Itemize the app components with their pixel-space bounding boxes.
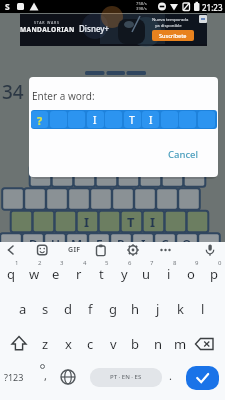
staticText: C bbox=[161, 236, 169, 252]
staticText: ? bbox=[37, 113, 43, 128]
staticText: s bbox=[42, 300, 49, 318]
staticText: a bbox=[19, 300, 27, 318]
staticText: 0 bbox=[218, 259, 222, 267]
staticText: j bbox=[156, 300, 160, 318]
staticText: I bbox=[150, 213, 156, 231]
staticText: , bbox=[44, 368, 47, 383]
staticText: Nueva temporada bbox=[152, 16, 189, 22]
staticText: T bbox=[129, 113, 135, 127]
staticText: D bbox=[29, 236, 38, 252]
staticText: E bbox=[96, 236, 103, 252]
staticText: u bbox=[142, 265, 151, 283]
staticText: 9 bbox=[195, 259, 199, 267]
staticText: Enter a word: bbox=[32, 89, 95, 103]
staticText: m bbox=[174, 335, 187, 353]
staticText: M bbox=[71, 236, 83, 252]
staticText: STAR WARS bbox=[34, 20, 60, 25]
staticText: I bbox=[93, 113, 97, 127]
staticText: ya disponible bbox=[155, 22, 182, 28]
staticText: d bbox=[64, 300, 72, 318]
staticText: 8 bbox=[173, 259, 177, 267]
staticText: . bbox=[169, 368, 172, 383]
staticText: k bbox=[177, 300, 184, 318]
staticText: I bbox=[141, 236, 146, 252]
staticText: R bbox=[117, 236, 125, 252]
staticText: I bbox=[84, 213, 90, 231]
staticText: 398/s bbox=[136, 6, 147, 12]
staticText: o bbox=[187, 265, 195, 283]
staticText: e bbox=[52, 265, 60, 283]
staticText: 7 bbox=[150, 259, 154, 267]
staticText: 2 bbox=[38, 259, 42, 267]
staticText: x bbox=[65, 335, 72, 353]
staticText: ?123 bbox=[4, 371, 24, 383]
staticText: O bbox=[182, 236, 192, 252]
staticText: i bbox=[167, 265, 171, 283]
staticText: c bbox=[87, 335, 94, 353]
staticText: Disney+ bbox=[79, 23, 110, 34]
staticText: v bbox=[110, 335, 117, 353]
staticText: 1 bbox=[15, 259, 19, 267]
staticText: 4 bbox=[83, 259, 87, 267]
staticText: Cancel bbox=[168, 148, 199, 161]
staticText: 3 bbox=[60, 259, 64, 267]
staticText: z bbox=[42, 335, 49, 353]
staticText: y bbox=[121, 265, 128, 283]
staticText: b bbox=[131, 335, 139, 353]
staticText: 5 bbox=[105, 259, 109, 267]
staticText: q bbox=[7, 265, 15, 283]
staticText: f bbox=[88, 300, 93, 318]
staticText: r bbox=[76, 265, 82, 283]
staticText: l bbox=[201, 300, 205, 318]
staticText: GIF bbox=[68, 245, 81, 255]
staticText: 6 bbox=[128, 259, 132, 267]
staticText: I bbox=[149, 113, 153, 127]
staticText: S bbox=[5, 1, 10, 13]
staticText: MANDALORIAN bbox=[20, 25, 75, 34]
staticText: 758/s bbox=[136, 1, 147, 7]
staticText: T bbox=[127, 213, 135, 231]
staticText: Suscríbete bbox=[159, 32, 187, 39]
staticText: U bbox=[51, 236, 60, 252]
staticText: 34 bbox=[2, 79, 24, 103]
staticText: 21:23 bbox=[202, 2, 223, 13]
staticText: h bbox=[131, 300, 140, 318]
staticText: PT · EN · ES bbox=[110, 373, 142, 381]
staticText: n bbox=[154, 335, 163, 353]
staticText: w bbox=[29, 265, 40, 283]
staticText: p bbox=[210, 265, 218, 283]
staticText: g bbox=[109, 300, 117, 318]
staticText: t bbox=[99, 265, 104, 283]
